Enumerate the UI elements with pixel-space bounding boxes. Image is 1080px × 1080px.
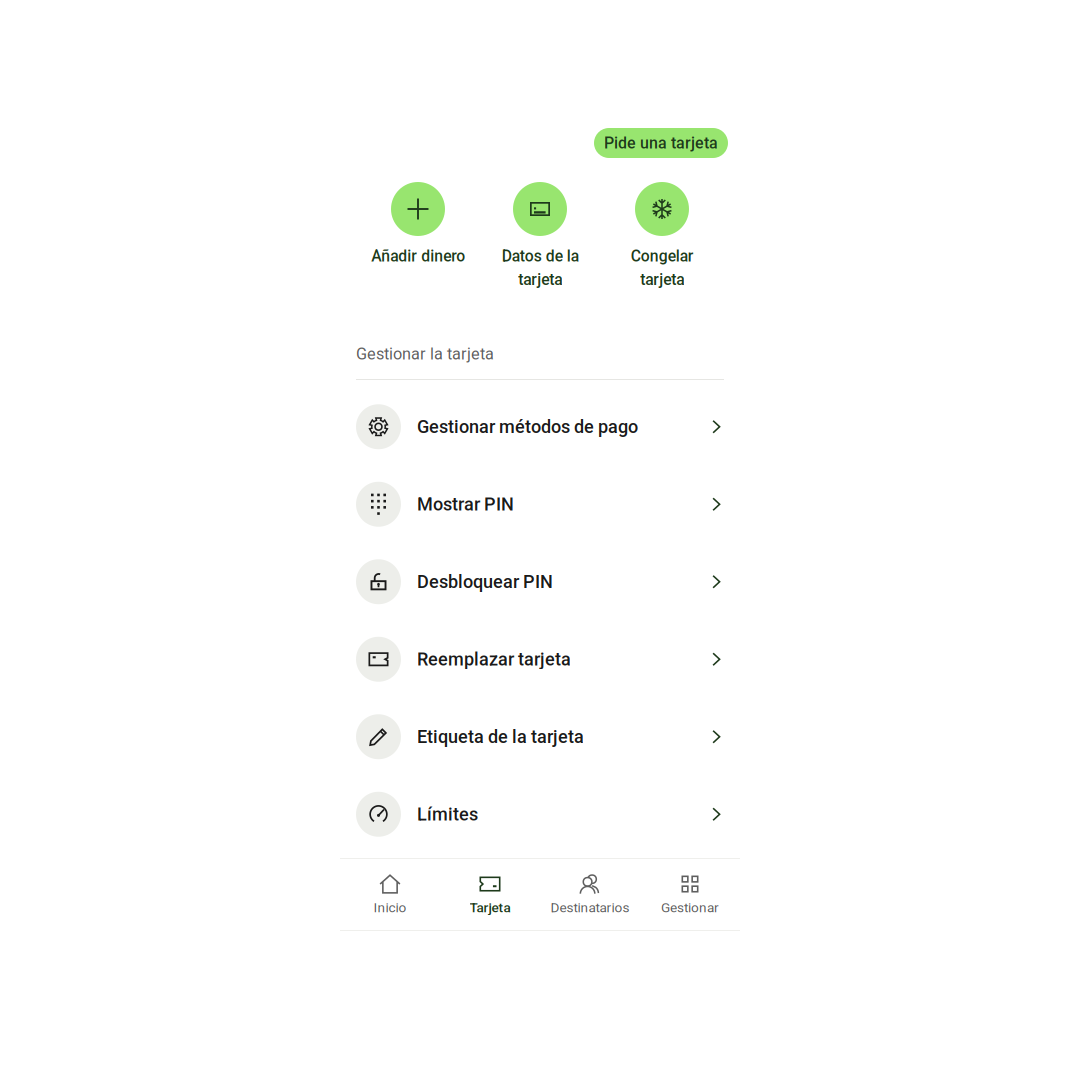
button[interactable]: Mostrar PIN: [356, 465, 724, 543]
staticText: Reemplazar tarjeta: [417, 649, 571, 670]
button[interactable]: Reemplazar tarjeta: [356, 620, 724, 698]
staticText: Mostrar PIN: [417, 494, 514, 515]
button[interactable]: Añadir dinero: [357, 182, 479, 342]
staticText: Pide una tarjeta: [604, 134, 718, 152]
button[interactable]: Etiqueta de la tarjeta: [356, 698, 724, 775]
staticText: Etiqueta de la tarjeta: [417, 726, 584, 747]
button[interactable]: Destinatarios: [540, 859, 640, 930]
button[interactable]: Límites: [356, 775, 724, 853]
button[interactable]: Desbloquear PIN: [356, 543, 724, 620]
button[interactable]: Gestionar métodos de pago: [356, 388, 724, 465]
staticText: Límites: [417, 804, 478, 825]
staticText: Congelar tarjeta: [630, 247, 693, 289]
staticText: Gestionar métodos de pago: [417, 416, 638, 437]
staticText: Tarjeta: [469, 899, 510, 915]
button[interactable]: Gestionar: [640, 859, 740, 930]
staticText: Desbloquear PIN: [417, 571, 553, 592]
staticText: Destinatarios: [550, 899, 629, 915]
staticText: Gestionar: [661, 899, 719, 915]
button[interactable]: Pide una tarjeta: [594, 128, 728, 158]
staticText: Añadir dinero: [371, 247, 465, 265]
button[interactable]: Datos de la tarjeta: [479, 182, 601, 342]
button[interactable]: Congelar tarjeta: [601, 182, 723, 342]
button[interactable]: Inicio: [340, 859, 440, 930]
staticText: Inicio: [373, 899, 406, 915]
staticText: Datos de la tarjeta: [501, 247, 578, 289]
staticText: Gestionar la tarjeta: [356, 344, 494, 364]
button[interactable]: Tarjeta: [440, 859, 540, 930]
